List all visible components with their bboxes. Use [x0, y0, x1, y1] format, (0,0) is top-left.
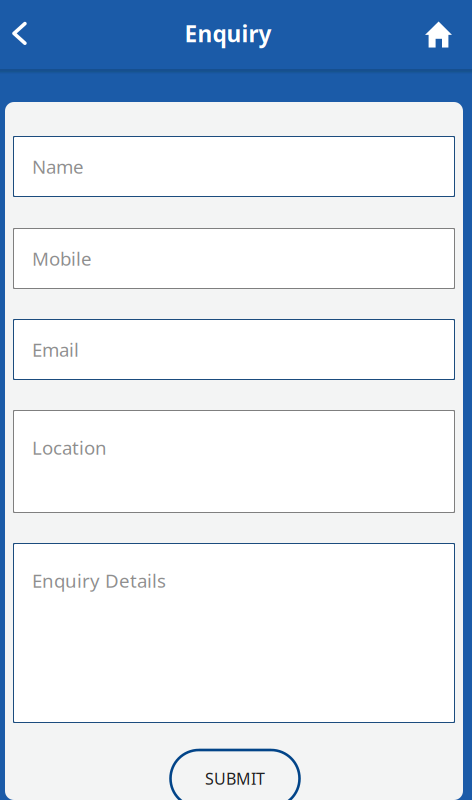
button[interactable]: Name	[13, 136, 455, 197]
staticText: Email	[32, 337, 79, 362]
staticText: Mobile	[32, 246, 92, 271]
button[interactable]: Home	[409, 9, 472, 59]
button[interactable]: Enquiry Details	[13, 543, 455, 723]
button[interactable]: Back	[0, 9, 44, 60]
button[interactable]: Mobile	[13, 228, 455, 289]
button[interactable]: Email	[13, 319, 455, 380]
staticText: Enquiry	[184, 18, 271, 48]
staticText: Name	[32, 154, 84, 179]
staticText: SUBMIT	[205, 768, 265, 789]
button[interactable]: Location	[13, 410, 455, 513]
staticText: Enquiry Details	[32, 568, 166, 593]
button[interactable]: SUBMIT	[170, 750, 299, 800]
staticText: Location	[32, 435, 107, 460]
